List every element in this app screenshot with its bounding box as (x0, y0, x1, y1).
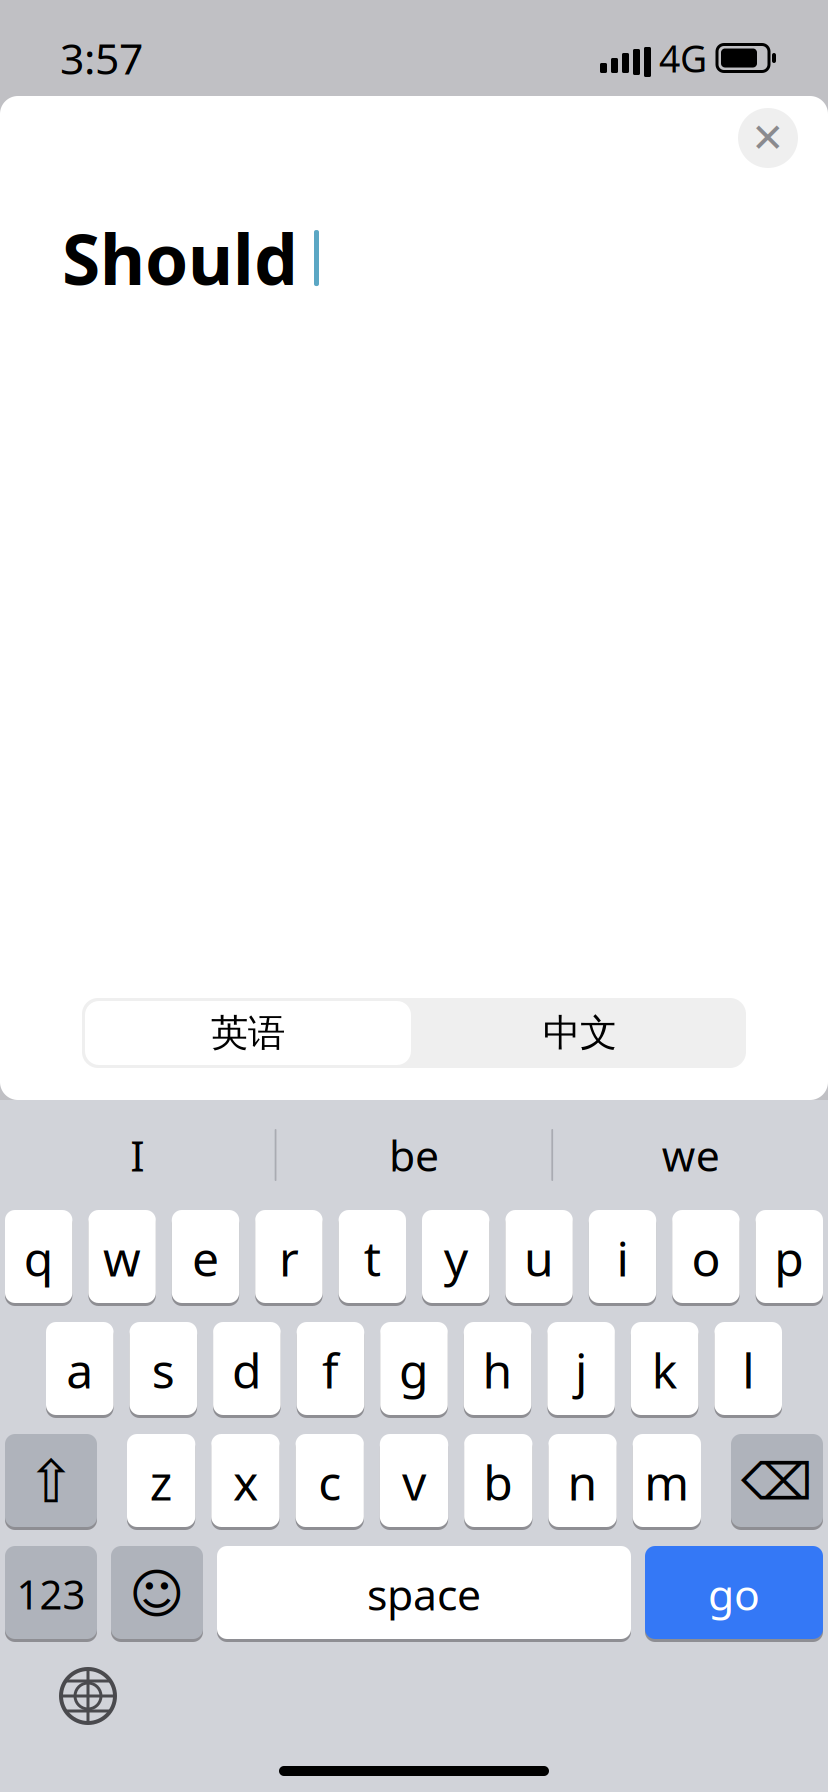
staticText: l (742, 1338, 754, 1402)
staticText: go (708, 1566, 760, 1622)
staticText: 123 (16, 1567, 85, 1620)
button[interactable]: k (631, 1322, 698, 1418)
staticText: 4G (659, 33, 707, 83)
button[interactable]: c (296, 1434, 364, 1530)
staticText: e (192, 1226, 219, 1290)
staticText: f (322, 1338, 339, 1402)
staticText: Should (62, 212, 298, 304)
button[interactable]: t (339, 1210, 406, 1306)
staticText: i (616, 1226, 628, 1290)
staticText: s (152, 1338, 175, 1402)
button[interactable]: x (211, 1434, 280, 1530)
button[interactable]: v (380, 1434, 448, 1530)
button[interactable]: Next keyboard (58, 1666, 118, 1726)
staticText: k (652, 1338, 678, 1402)
button[interactable]: j (547, 1322, 615, 1418)
staticText: q (24, 1226, 54, 1290)
staticText: 中文 (543, 1010, 617, 1056)
staticText: o (691, 1226, 720, 1290)
staticText: n (568, 1450, 598, 1514)
staticText: u (524, 1226, 554, 1290)
button[interactable]: Delete (731, 1434, 823, 1530)
staticText: space (367, 1566, 481, 1622)
staticText: ⇧ (26, 1449, 75, 1515)
staticText: g (399, 1338, 429, 1402)
staticText: c (318, 1450, 341, 1514)
button[interactable]: i (589, 1210, 656, 1306)
staticText: ✕ (751, 115, 785, 161)
staticText: w (103, 1226, 141, 1290)
button[interactable]: Emoji (111, 1546, 203, 1642)
staticText: d (232, 1338, 262, 1402)
staticText: 3:57 (60, 30, 143, 86)
button[interactable]: Numbers (5, 1546, 97, 1642)
button[interactable]: we (553, 1100, 828, 1210)
button[interactable]: w (88, 1210, 156, 1306)
staticText: ⌫ (741, 1453, 813, 1511)
button[interactable]: Close (738, 108, 798, 168)
staticText: t (364, 1226, 381, 1290)
button[interactable]: I (0, 1100, 275, 1210)
staticText: b (483, 1450, 513, 1514)
button[interactable]: e (172, 1210, 239, 1306)
staticText: a (66, 1338, 93, 1402)
button[interactable]: u (505, 1210, 573, 1306)
staticText: x (233, 1450, 258, 1514)
button[interactable]: a (46, 1322, 114, 1418)
staticText: I (130, 1127, 144, 1183)
button[interactable]: o (672, 1210, 740, 1306)
button[interactable]: go (645, 1546, 823, 1642)
staticText: h (483, 1338, 513, 1402)
button[interactable]: q (5, 1210, 72, 1306)
button[interactable]: be (277, 1100, 551, 1210)
button[interactable]: f (297, 1322, 364, 1418)
staticText: m (644, 1450, 689, 1514)
button[interactable]: Shift (5, 1434, 97, 1530)
staticText: 英语 (211, 1010, 285, 1056)
staticText: z (150, 1450, 173, 1514)
staticText: p (774, 1226, 804, 1290)
button[interactable]: n (548, 1434, 617, 1530)
button[interactable]: 中文 (414, 998, 746, 1068)
staticText: we (662, 1127, 720, 1183)
button[interactable]: 英语 (82, 998, 414, 1068)
staticText: r (279, 1226, 299, 1290)
button[interactable]: b (464, 1434, 532, 1530)
button[interactable]: space (217, 1546, 631, 1642)
staticText: ☺ (129, 1564, 185, 1624)
button[interactable]: s (130, 1322, 197, 1418)
button[interactable]: r (255, 1210, 323, 1306)
button[interactable]: p (756, 1210, 823, 1306)
button[interactable]: z (127, 1434, 195, 1530)
button[interactable]: h (464, 1322, 531, 1418)
button[interactable]: y (422, 1210, 489, 1306)
staticText: j (575, 1338, 587, 1402)
button[interactable]: g (380, 1322, 448, 1418)
button[interactable]: m (633, 1434, 701, 1530)
button[interactable]: l (714, 1322, 782, 1418)
staticText: be (389, 1127, 439, 1183)
staticText: y (444, 1226, 468, 1290)
staticText: v (402, 1450, 426, 1514)
button[interactable]: d (213, 1322, 281, 1418)
